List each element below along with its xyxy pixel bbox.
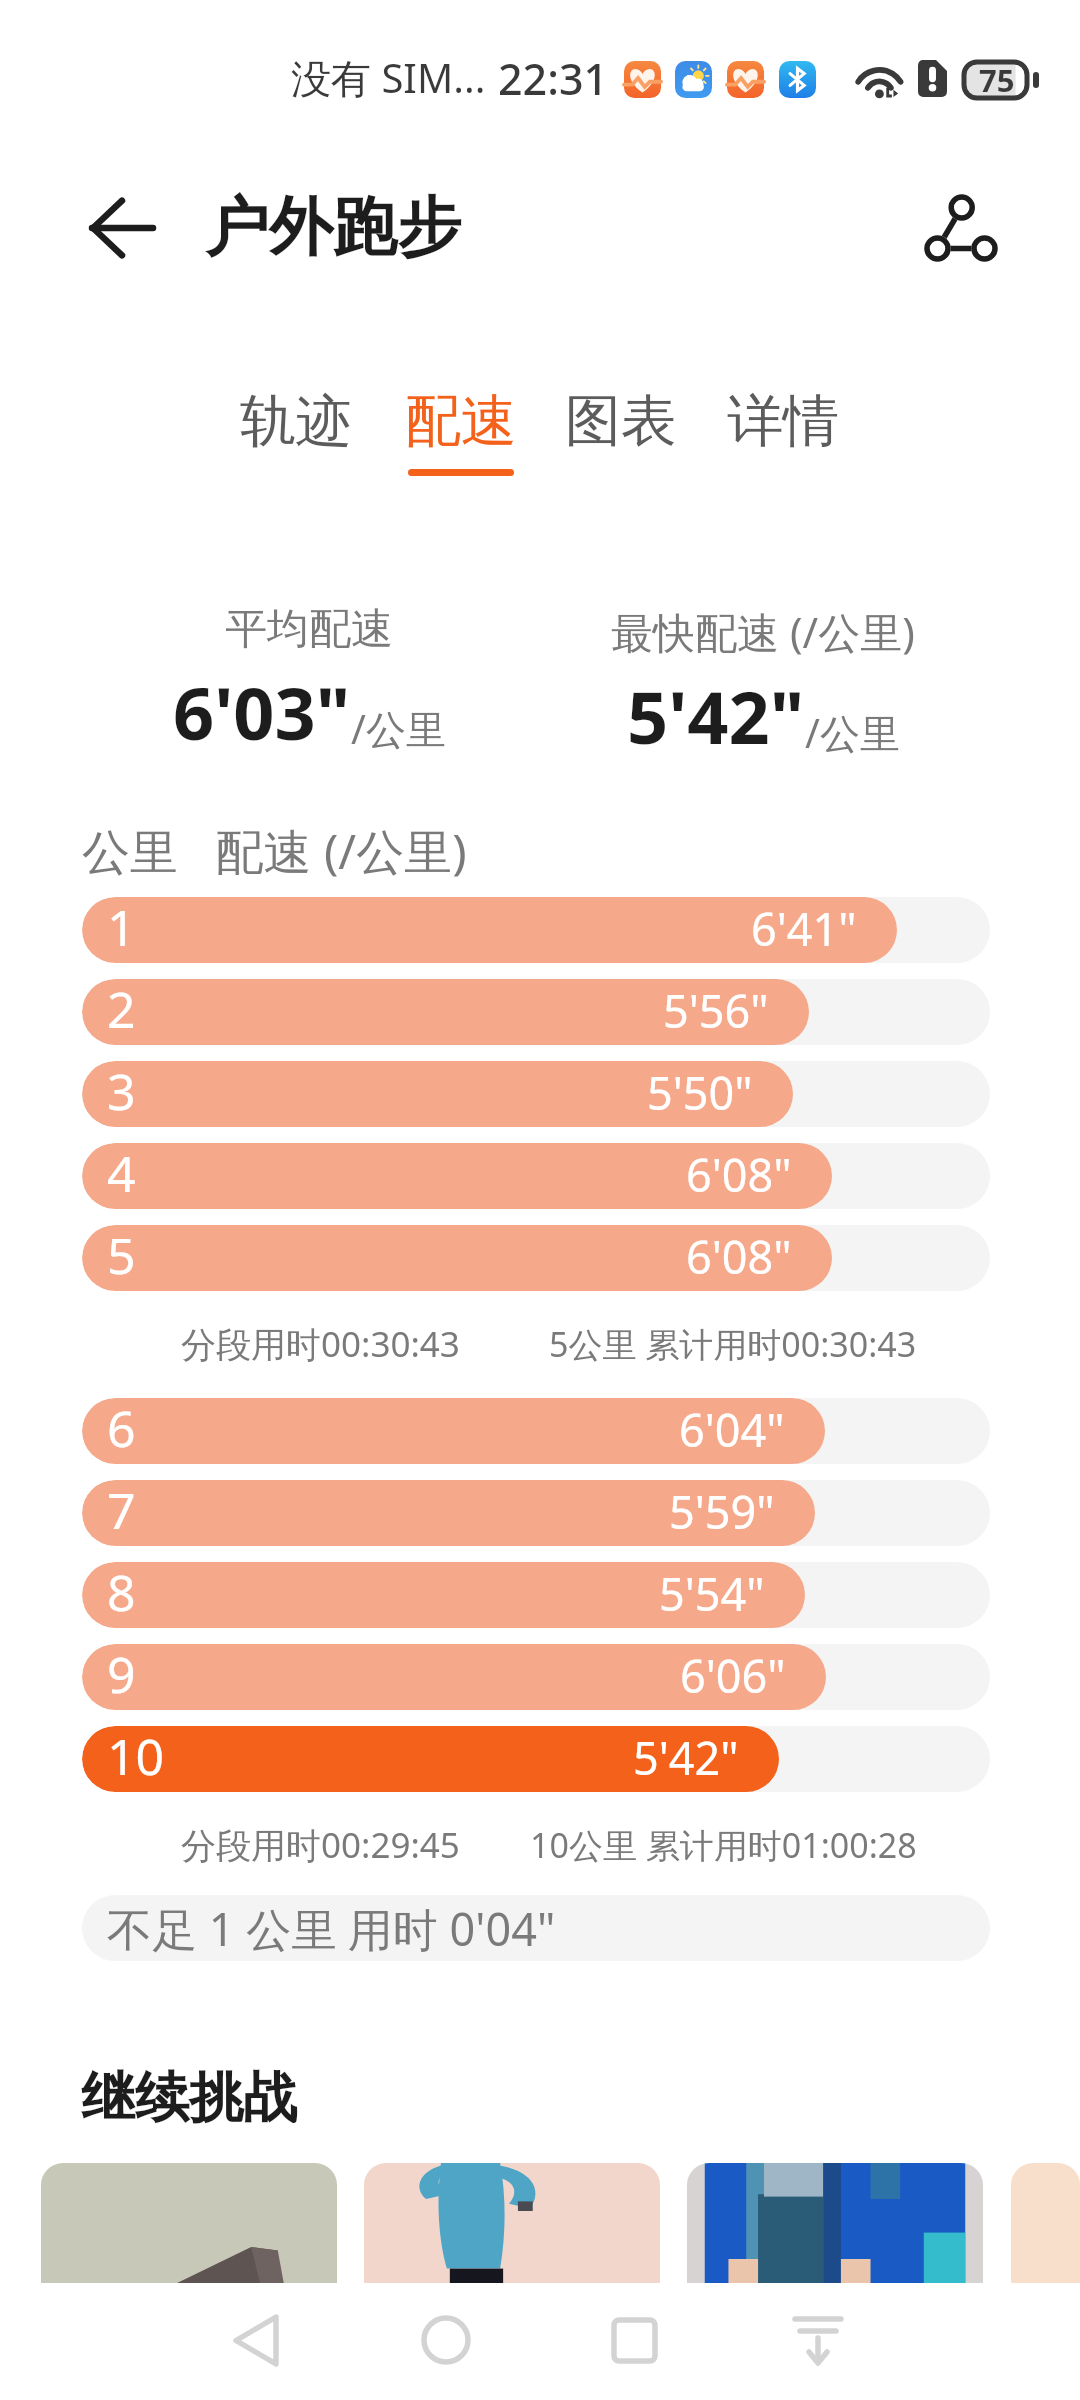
button[interactable]: 不足 1 公里 用时 0'04": [82, 1895, 990, 1961]
button[interactable]: 8: [82, 1562, 990, 1628]
staticText: 没有 SIM...: [291, 50, 486, 105]
staticText: 10: [107, 1726, 165, 1788]
button[interactable]: Home: [386, 2280, 506, 2400]
button[interactable]: 7: [82, 1480, 990, 1546]
staticText: 分段用时00:29:45: [181, 1821, 460, 1869]
staticText: 详情: [727, 386, 839, 457]
staticText: 户外跑步: [205, 187, 461, 268]
staticText: 5公里 累计用时00:30:43: [549, 1321, 917, 1367]
button[interactable]: 图表: [565, 386, 677, 476]
staticText: 6'06": [680, 1645, 786, 1706]
button[interactable]: 9: [82, 1644, 990, 1710]
staticText: 继续挑战: [81, 2064, 297, 2132]
staticText: 6'04": [679, 1399, 785, 1460]
staticText: 轨迹: [240, 386, 352, 457]
staticText: 75: [979, 59, 1015, 101]
staticText: 2: [107, 979, 136, 1041]
staticText: /公里: [805, 705, 900, 760]
staticText: 5'54": [659, 1563, 765, 1624]
staticText: 6: [107, 1398, 136, 1460]
staticText: 8: [107, 1562, 136, 1624]
staticText: 6'08": [686, 1144, 792, 1205]
button[interactable]: [41, 2163, 337, 2283]
button[interactable]: 轨迹: [240, 386, 352, 476]
staticText: 22:31: [498, 49, 609, 108]
button[interactable]: 10: [82, 1726, 990, 1792]
button[interactable]: [364, 2163, 660, 2283]
staticText: 图表: [565, 386, 677, 457]
button[interactable]: 5: [82, 1225, 990, 1291]
staticText: 5'50": [647, 1062, 753, 1123]
staticText: 9: [107, 1644, 136, 1706]
button[interactable]: Hide navigation bar: [758, 2280, 878, 2400]
staticText: 6'08": [686, 1226, 792, 1287]
staticText: 3: [107, 1061, 136, 1123]
button[interactable]: 4: [82, 1143, 990, 1209]
button[interactable]: 3: [82, 1061, 990, 1127]
staticText: 5: [107, 1225, 136, 1287]
staticText: 最快配速 (/公里): [611, 603, 915, 660]
staticText: 不足 1 公里 用时 0'04": [107, 1898, 556, 1959]
button[interactable]: Back: [61, 167, 183, 289]
staticText: 分段用时00:30:43: [181, 1320, 460, 1368]
staticText: 5'56": [663, 980, 769, 1041]
staticText: 5'42": [633, 1727, 739, 1788]
staticText: 5'42": [627, 667, 805, 765]
button[interactable]: 2: [82, 979, 990, 1045]
button[interactable]: Share: [900, 167, 1022, 289]
button[interactable]: 1: [82, 897, 990, 963]
staticText: /公里: [351, 701, 446, 756]
staticText: 平均配速: [225, 603, 393, 656]
button[interactable]: 配速: [405, 386, 517, 476]
button[interactable]: [687, 2163, 983, 2283]
button[interactable]: 6: [82, 1398, 990, 1464]
staticText: 配速: [405, 386, 517, 457]
staticText: 公里 配速 (/公里): [82, 818, 467, 884]
staticText: 5'59": [669, 1481, 775, 1542]
staticText: 6'03": [173, 663, 351, 761]
staticText: 7: [107, 1480, 136, 1542]
staticText: 6'41": [751, 898, 857, 959]
button[interactable]: Recents: [574, 2280, 694, 2400]
staticText: 10公里 累计用时01:00:28: [530, 1822, 917, 1868]
button[interactable]: 详情: [727, 386, 839, 476]
staticText: 1: [107, 897, 136, 959]
staticText: 4: [107, 1143, 136, 1205]
button[interactable]: [1011, 2163, 1080, 2283]
button[interactable]: Back: [196, 2280, 316, 2400]
